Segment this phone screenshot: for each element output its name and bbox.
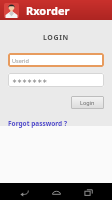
button[interactable]: Home	[48, 184, 64, 200]
button[interactable]: Forgot password ?	[8, 118, 67, 129]
button[interactable]: Back	[16, 184, 32, 200]
staticText: ∗∗∗∗∗∗∗	[12, 77, 48, 84]
staticText: Forgot password ?	[8, 119, 67, 128]
button[interactable]: Recent apps	[80, 184, 96, 200]
button[interactable]: Password	[8, 73, 104, 87]
button[interactable]: Login	[71, 96, 104, 109]
button[interactable]: Rxorder	[3, 2, 19, 18]
staticText: Login	[80, 99, 95, 106]
staticText: Userid	[12, 57, 29, 64]
staticText: Rxorder	[26, 3, 70, 18]
button[interactable]: Userid	[8, 53, 104, 67]
staticText: LOGIN	[43, 33, 69, 43]
